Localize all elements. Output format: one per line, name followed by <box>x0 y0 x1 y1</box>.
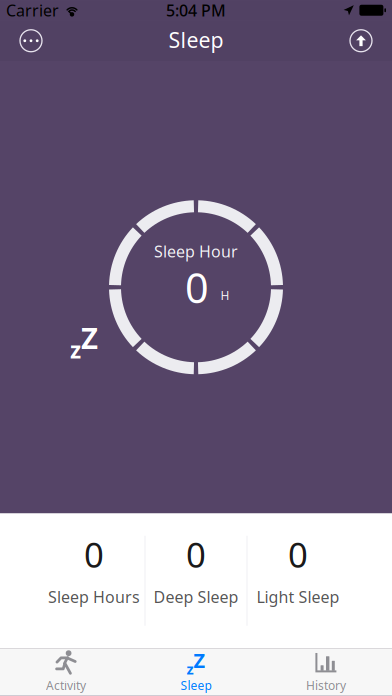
staticText: z <box>70 335 81 365</box>
button[interactable]: Start sleep <box>350 30 372 52</box>
button[interactable]: Activity <box>1 648 131 696</box>
staticText: z <box>186 659 193 679</box>
button[interactable]: z <box>131 648 261 696</box>
staticText: Sleep <box>180 677 211 693</box>
staticText: 0 <box>185 260 209 315</box>
staticText: Light Sleep <box>256 586 339 607</box>
staticText: H <box>220 287 229 303</box>
staticText: 0 <box>288 531 308 577</box>
staticText: Carrier <box>6 0 59 21</box>
staticText: Z <box>81 318 98 357</box>
staticText: 5:04 PM <box>166 0 226 21</box>
staticText: Sleep <box>168 26 223 54</box>
staticText: 0 <box>186 531 206 577</box>
staticText: Activity <box>46 677 86 693</box>
button[interactable]: History <box>261 648 391 696</box>
staticText: Sleep Hours <box>48 586 140 607</box>
staticText: History <box>306 677 346 693</box>
staticText: Z <box>193 647 205 674</box>
staticText: Sleep Hour <box>154 241 238 262</box>
button[interactable]: More options <box>20 30 42 52</box>
staticText: 0 <box>84 531 104 577</box>
staticText: Deep Sleep <box>153 586 238 607</box>
